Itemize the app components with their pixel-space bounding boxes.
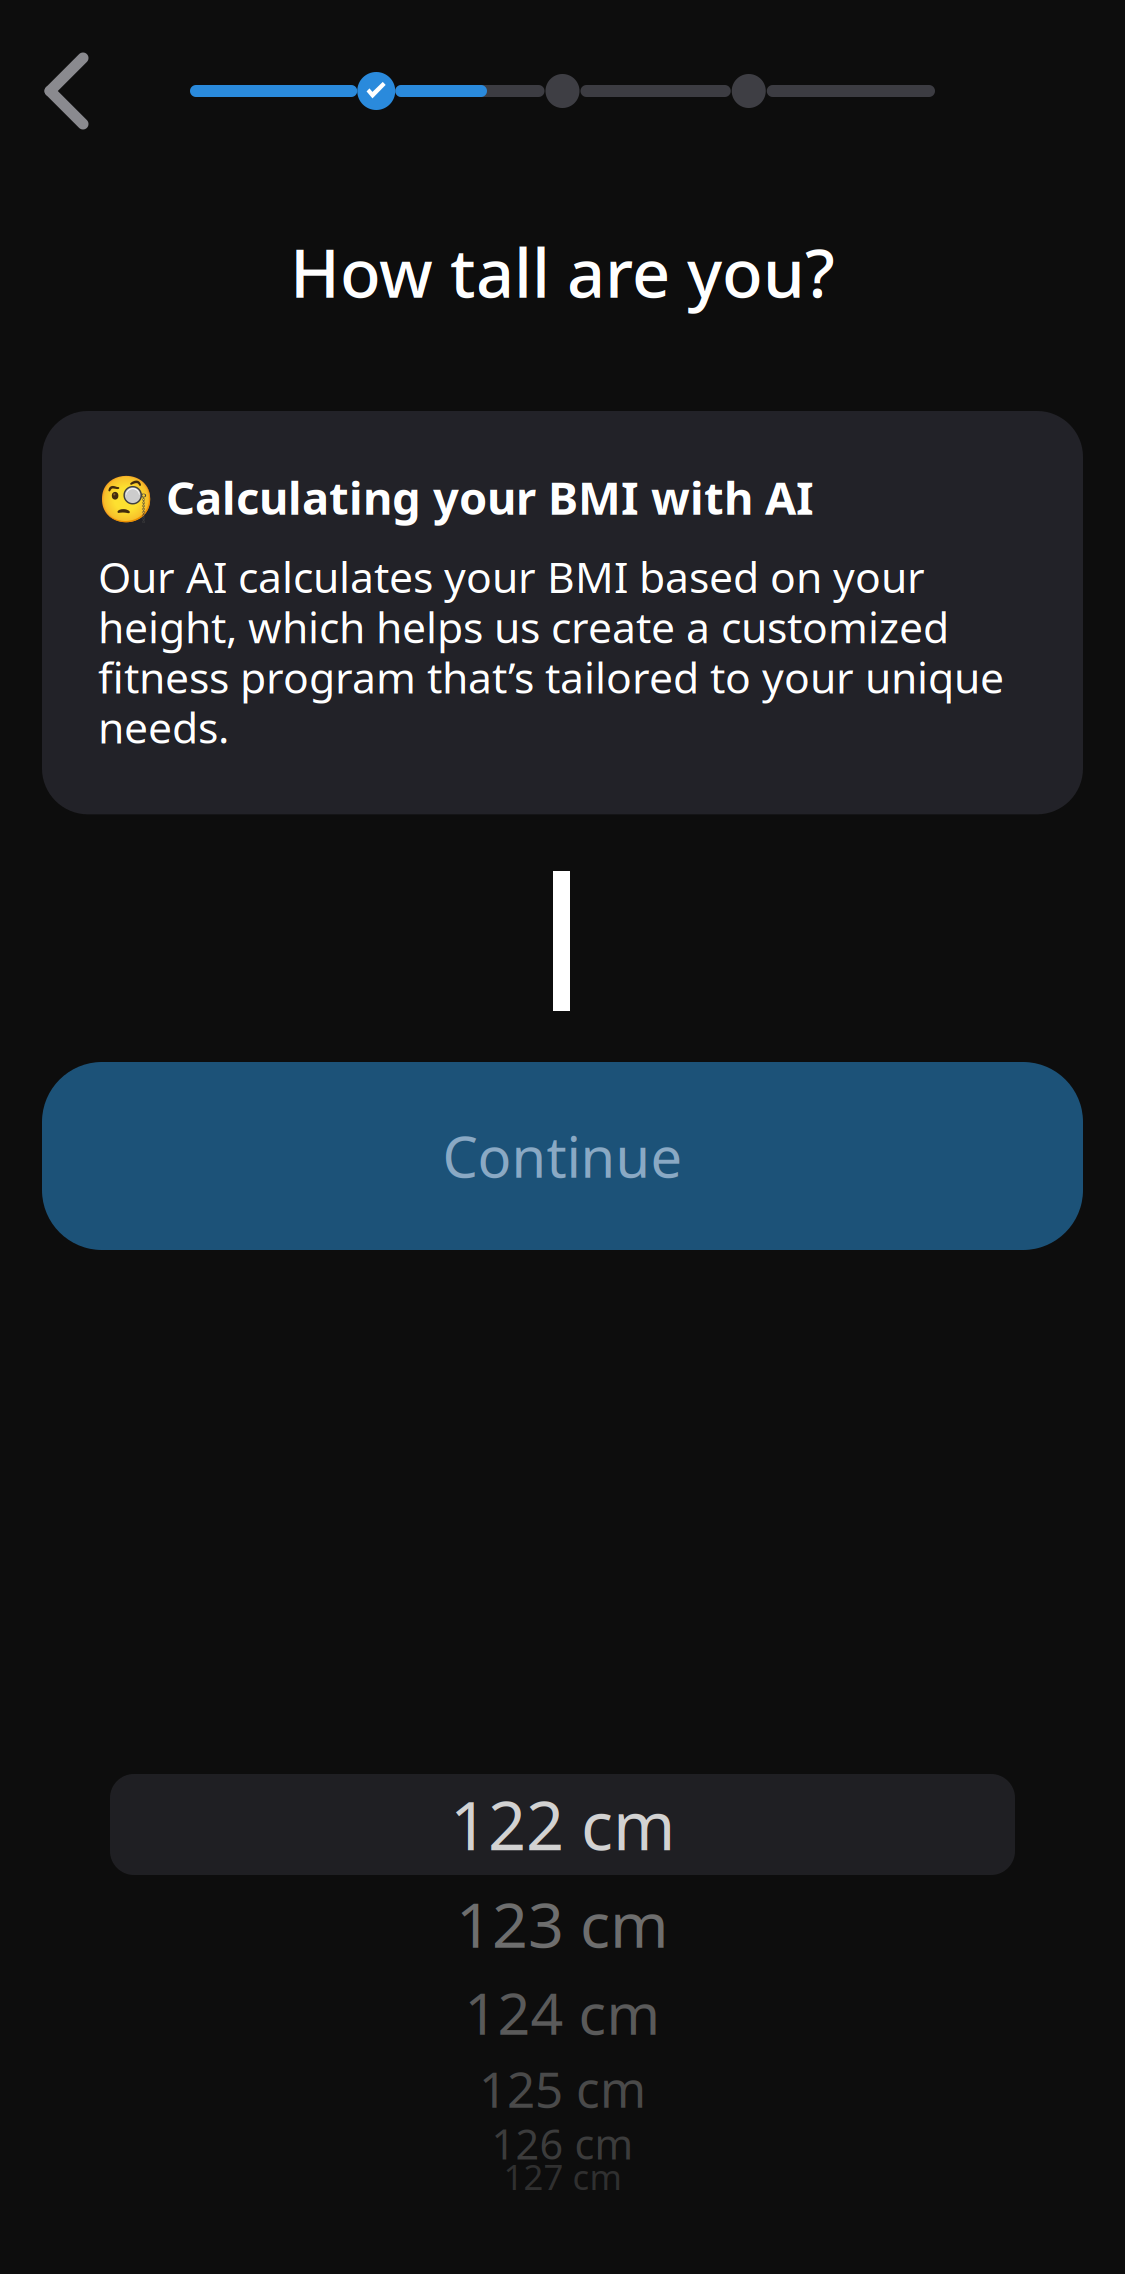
button[interactable]: Continue <box>42 1062 1083 1250</box>
staticText: Continue <box>442 1119 682 1193</box>
staticText: 127 cm <box>503 2153 621 2199</box>
button[interactable]: Back <box>7 31 127 151</box>
staticText: Our AI calculates your BMI based on your… <box>98 548 1004 755</box>
staticText: 123 cm <box>456 1882 669 1965</box>
button[interactable]: 122 cm <box>110 1774 1015 1875</box>
staticText: 126 cm <box>491 2116 633 2171</box>
staticText: 125 cm <box>479 2056 646 2121</box>
staticText: 🧐 Calculating your BMI with AI <box>98 467 814 527</box>
staticText: 124 cm <box>464 1974 660 2050</box>
staticText: 122 cm <box>450 1780 675 1869</box>
staticText: How tall are you? <box>290 228 835 316</box>
